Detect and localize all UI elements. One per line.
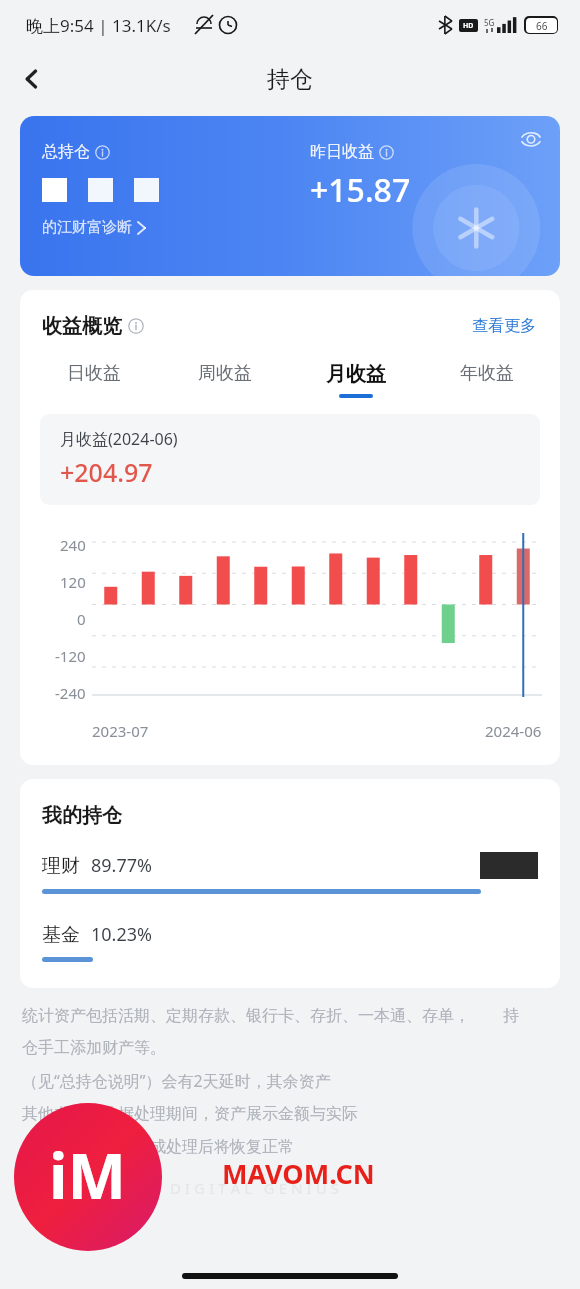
staticText: 的江财富诊断 <box>42 218 132 237</box>
staticText: 0 <box>77 609 86 629</box>
staticText: 基金 <box>42 923 80 947</box>
button[interactable]: 查看更多 <box>468 312 540 340</box>
button[interactable]: 月收益 <box>290 362 421 398</box>
staticText: 仓手工添加财产等。 <box>22 1038 166 1058</box>
staticText: 持仓 <box>267 65 313 94</box>
staticText: 其他在每日数据处理期间，资产展示金额与实际 <box>22 1104 358 1124</box>
staticText: （见“总持仓说明”）会有2天延时，其余资产 <box>22 1070 331 1092</box>
staticText: D I G I T A L G E N I U S <box>170 1178 339 1198</box>
staticText: 66 <box>536 19 548 33</box>
staticText: 总持仓 <box>42 142 90 162</box>
staticText: MAVOM.CN <box>222 1155 375 1192</box>
staticText: 统计资产包括活期、定期存款、银行卡、存折、一本通、存单， 持 <box>22 1004 520 1026</box>
button[interactable]: 日收益 <box>28 362 159 396</box>
staticText: 2023-07 <box>92 721 149 741</box>
staticText: +15.87 <box>310 168 411 212</box>
staticText: 年收益 <box>460 362 514 385</box>
staticText: 月收益(2024-06) <box>60 428 178 450</box>
staticText: 240 <box>60 535 86 555</box>
staticText: -240 <box>55 683 86 703</box>
staticText: +204.97 <box>60 455 153 489</box>
staticText: 10.23% <box>91 922 152 947</box>
staticText: 89.77% <box>91 853 152 878</box>
staticText: 5G <box>484 17 495 28</box>
button[interactable]: 的江财富诊断 <box>42 218 146 237</box>
staticText: 我的持仓 <box>42 803 122 828</box>
staticText: 全额有暂偏差，完成处理后将恢复正常 <box>22 1137 294 1157</box>
button[interactable]: 基金 <box>42 922 538 962</box>
staticText: 日收益 <box>67 362 121 385</box>
staticText: iM <box>49 1133 127 1217</box>
button[interactable]: Toggle amount visibility <box>514 122 548 156</box>
staticText: 昨日收益 <box>310 142 374 162</box>
staticText: 查看更多 <box>472 316 536 336</box>
staticText: 理财 <box>42 854 80 878</box>
staticText: -120 <box>55 646 86 666</box>
staticText: 晚上9:54 | 13.1K/s <box>26 14 171 37</box>
button[interactable]: Back <box>8 55 56 103</box>
staticText: HD <box>463 21 474 31</box>
staticText: 120 <box>60 572 86 592</box>
staticText: 周收益 <box>198 362 252 385</box>
button[interactable]: 年收益 <box>421 362 552 396</box>
staticText: 收益概览 <box>42 314 122 339</box>
button[interactable]: 理财 <box>42 852 538 894</box>
staticText: 2024-06 <box>485 721 542 741</box>
staticText: 月收益 <box>326 362 386 387</box>
button[interactable]: Toggle amount visibility <box>20 116 560 276</box>
button[interactable]: 周收益 <box>159 362 290 396</box>
